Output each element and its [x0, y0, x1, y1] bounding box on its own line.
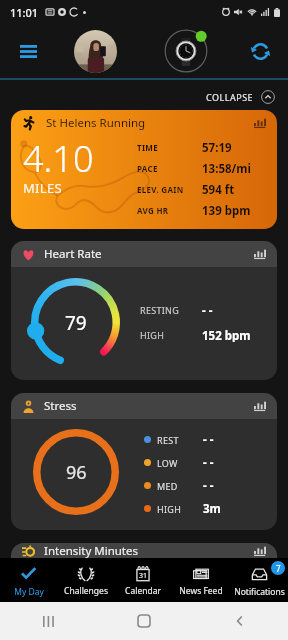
staticText: 3m: [203, 501, 221, 517]
staticText: LOW: [157, 457, 178, 469]
staticText: HIGH: [140, 329, 165, 341]
staticText: TIME: [137, 142, 158, 153]
button[interactable]: Heart Rate: [11, 241, 277, 380]
staticText: AVG HR: [137, 205, 169, 216]
staticText: PACE: [137, 163, 158, 174]
button[interactable]: Sync: [242, 33, 278, 69]
staticText: Intensity Minutes: [44, 543, 138, 558]
staticText: 7: [276, 563, 281, 574]
staticText: COLLAPSE: [206, 91, 254, 103]
button[interactable]: COLLAPSE: [204, 88, 277, 106]
staticText: 31: [139, 571, 148, 581]
button[interactable]: Connected watch: [164, 29, 208, 73]
staticText: Stress: [44, 398, 77, 414]
button[interactable]: News Feed: [172, 558, 230, 602]
staticText: REST: [157, 434, 179, 446]
staticText: 594 ft: [202, 182, 235, 198]
staticText: MED: [157, 480, 178, 492]
staticText: Notifications: [234, 586, 285, 598]
button[interactable]: Menu: [10, 33, 46, 69]
button[interactable]: St Helens Running: [11, 110, 277, 229]
staticText: - -: [203, 478, 214, 494]
staticText: St Helens Running: [46, 115, 146, 131]
staticText: 79: [65, 310, 87, 336]
staticText: - -: [202, 303, 213, 317]
staticText: MILES: [23, 179, 62, 197]
staticText: 57:19: [202, 140, 232, 156]
staticText: 139 bpm: [202, 203, 251, 219]
staticText: RESTING: [140, 304, 180, 316]
staticText: - -: [203, 455, 214, 471]
button[interactable]: Notifications: [230, 558, 288, 602]
button[interactable]: My Day: [0, 558, 57, 602]
button[interactable]: Profile: [74, 30, 117, 73]
button[interactable]: Challenges: [57, 558, 114, 602]
staticText: 4.10: [23, 134, 94, 183]
staticText: 152 bpm: [202, 328, 251, 342]
button[interactable]: Stress: [11, 393, 277, 530]
staticText: Calendar: [125, 585, 161, 597]
button[interactable]: 31: [114, 558, 172, 602]
staticText: News Feed: [179, 585, 223, 597]
staticText: - -: [203, 432, 214, 448]
staticText: 13:58/mi: [202, 161, 251, 177]
staticText: Challenges: [64, 585, 108, 597]
staticText: ELEV. GAIN: [137, 184, 184, 195]
staticText: HIGH: [157, 503, 182, 515]
button[interactable]: Intensity Minutes: [11, 543, 277, 558]
staticText: 11:01: [10, 5, 39, 20]
staticText: 96: [66, 460, 87, 485]
staticText: My Day: [14, 586, 44, 598]
staticText: Heart Rate: [44, 246, 102, 262]
